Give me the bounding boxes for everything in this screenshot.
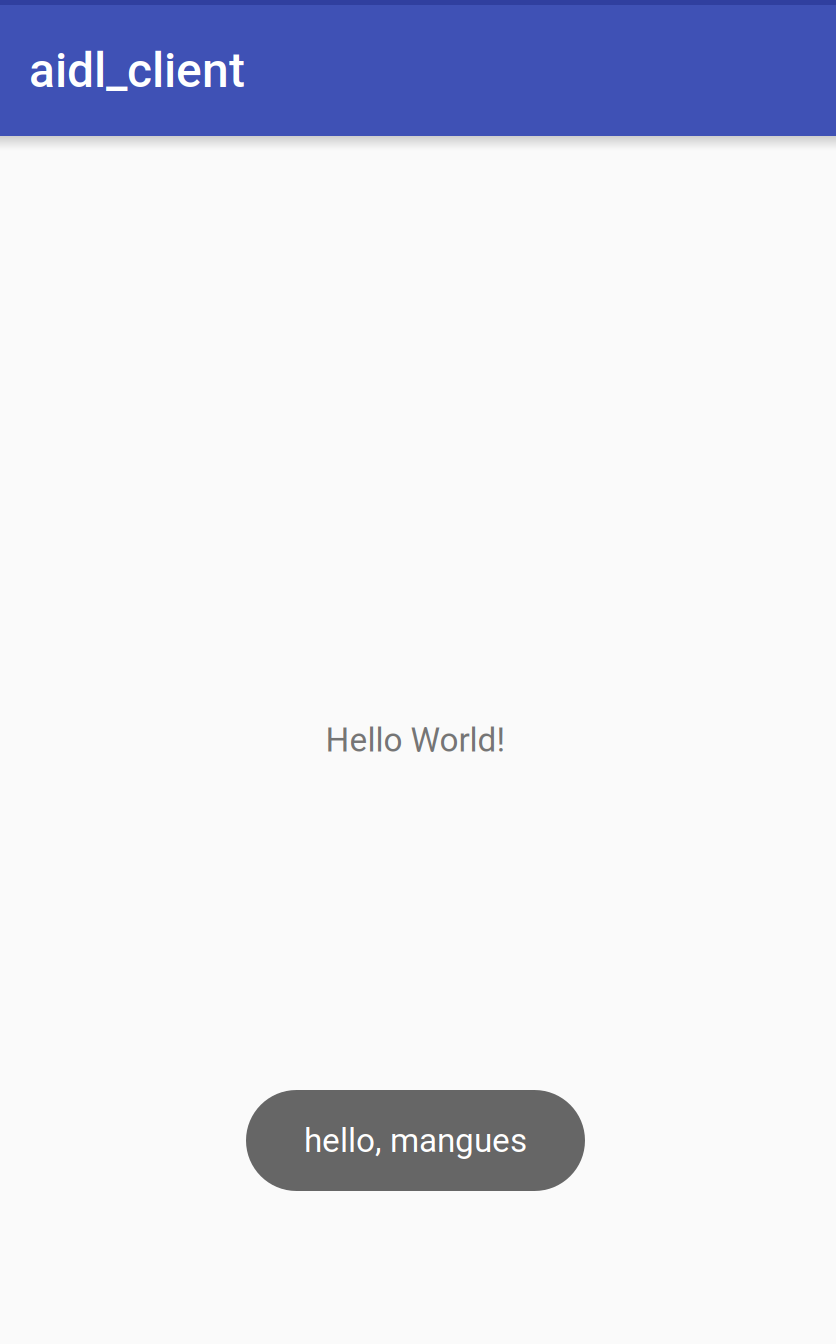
- staticText: Hello World!: [325, 720, 505, 760]
- staticText: aidl_client: [29, 42, 245, 99]
- button[interactable]: hello, mangues: [246, 1090, 585, 1191]
- staticText: hello, mangues: [304, 1121, 527, 1160]
